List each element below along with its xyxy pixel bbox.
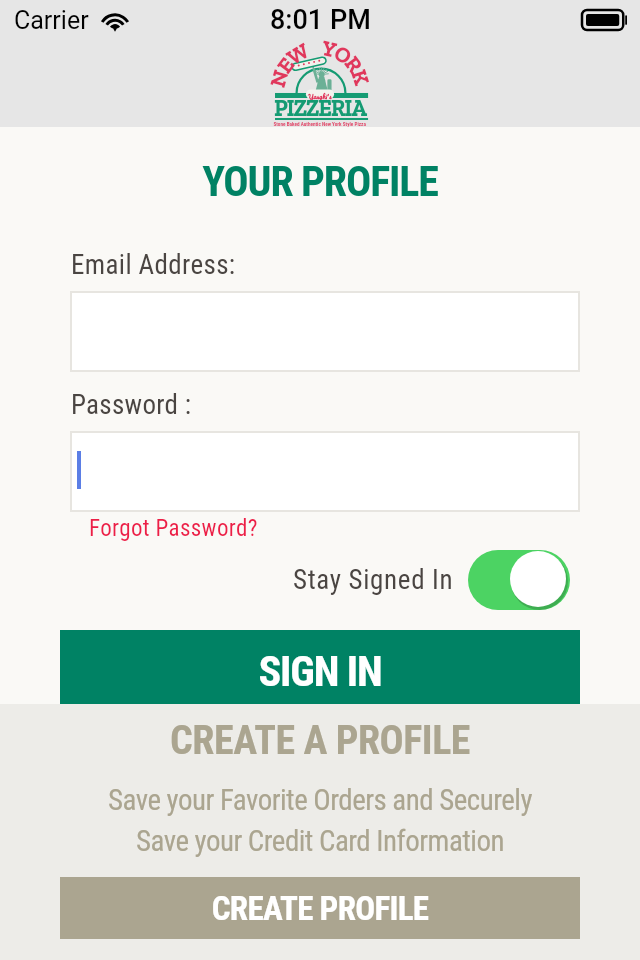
- staticText: Password :: [71, 389, 192, 421]
- staticText: Save your Favorite Orders and Securely: [0, 783, 640, 817]
- button[interactable]: Password input: [72, 433, 578, 510]
- button[interactable]: SIGN IN: [60, 630, 580, 720]
- staticText: 8:01 PM: [270, 4, 371, 36]
- button[interactable]: Forgot Password?: [89, 515, 258, 542]
- staticText: SIGN IN: [60, 647, 580, 696]
- staticText: Carrier: [14, 6, 89, 35]
- staticText: Email Address:: [71, 249, 236, 281]
- staticText: YOUR PROFILE: [0, 157, 640, 206]
- staticText: Save your Credit Card Information: [0, 824, 640, 858]
- staticText: CREATE PROFILE: [60, 889, 580, 928]
- other: Battery full: [581, 9, 628, 31]
- button[interactable]: CREATE PROFILE: [60, 877, 580, 939]
- staticText: Stay Signed In: [293, 564, 454, 596]
- staticText: CREATE A PROFILE: [0, 717, 640, 764]
- other: Wi-Fi signal: [101, 11, 129, 31]
- button[interactable]: Stay Signed In toggle: [467, 549, 571, 611]
